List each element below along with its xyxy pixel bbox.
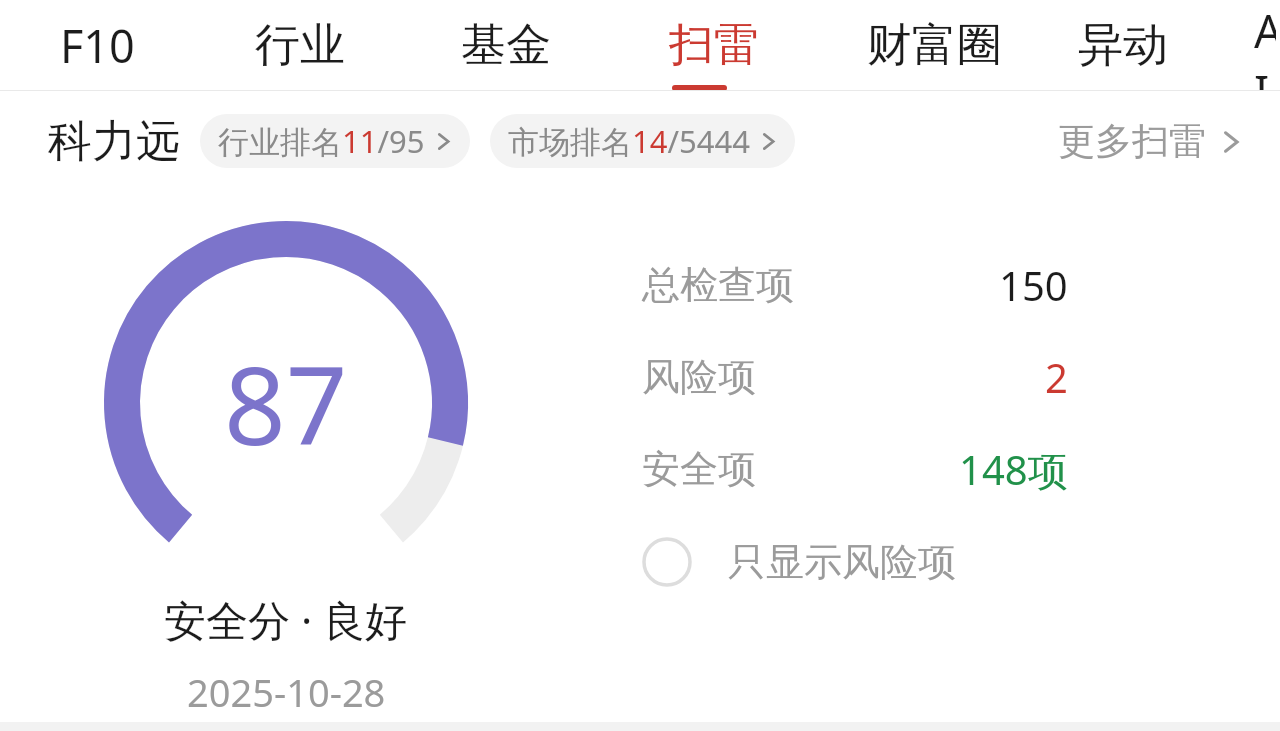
staticText: 2 — [1045, 350, 1068, 404]
button[interactable]: 行业 — [251, 17, 349, 74]
staticText: 更多扫雷 — [1058, 118, 1206, 165]
button[interactable]: 异动 — [1074, 17, 1172, 74]
button[interactable]: F10 — [56, 15, 139, 76]
button[interactable]: 扫雷 — [665, 17, 763, 74]
staticText: AI — [1254, 0, 1276, 91]
staticText: 风险项 — [642, 353, 756, 401]
staticText: 市场排名14/5444 — [508, 120, 750, 162]
staticText: 基金 — [461, 17, 551, 74]
button[interactable]: AI — [1250, 0, 1280, 91]
staticText: 安全分 · 良好 — [164, 591, 408, 648]
staticText: 科力远 — [48, 114, 180, 169]
button[interactable]: 基金 — [457, 17, 555, 74]
staticText: 148项 — [959, 442, 1068, 497]
staticText: 行业排名11/95 — [218, 120, 425, 162]
button[interactable]: 只显示风险项 — [642, 531, 956, 593]
staticText: 总检查项 — [642, 261, 794, 309]
staticText: 异动 — [1078, 17, 1168, 74]
button[interactable]: 财富圈 — [863, 17, 1006, 74]
button[interactable]: 更多扫雷 — [1054, 114, 1246, 169]
staticText: 安全项 — [642, 445, 756, 493]
staticText: F10 — [60, 15, 135, 76]
staticText: 财富圈 — [867, 17, 1002, 74]
button[interactable]: 行业排名11/95 — [200, 114, 470, 168]
button[interactable]: 市场排名14/5444 — [490, 114, 795, 168]
staticText: 只显示风险项 — [728, 538, 956, 586]
staticText: 2025-10-28 — [187, 666, 386, 718]
staticText: 150 — [999, 258, 1068, 312]
staticText: 87 — [224, 330, 348, 477]
staticText: 扫雷 — [669, 17, 759, 74]
staticText: 行业 — [255, 17, 345, 74]
